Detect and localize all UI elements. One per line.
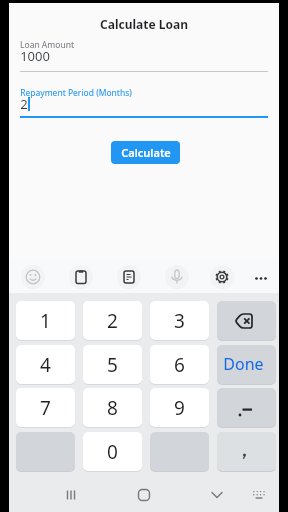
staticText: 2: [107, 308, 118, 334]
button[interactable]: [20, 84, 268, 121]
button[interactable]: 6: [150, 345, 209, 384]
button[interactable]: [21, 265, 45, 289]
button[interactable]: [199, 483, 235, 509]
button[interactable]: 8: [83, 388, 142, 427]
button[interactable]: [117, 265, 141, 289]
staticText: 5: [107, 352, 118, 378]
staticText: 6: [174, 352, 185, 378]
button[interactable]: Done: [217, 345, 276, 384]
button[interactable]: [249, 265, 273, 289]
button[interactable]: [217, 432, 276, 471]
button[interactable]: 2: [83, 301, 142, 340]
staticText: Done: [223, 353, 264, 375]
button[interactable]: [217, 301, 276, 340]
button[interactable]: [241, 483, 277, 509]
staticText: 0: [107, 439, 118, 465]
button[interactable]: 9: [150, 388, 209, 427]
button[interactable]: 0: [83, 432, 142, 471]
staticText: Loan Amount: [20, 39, 74, 51]
staticText: Calculate Loan: [100, 16, 188, 32]
button[interactable]: [69, 265, 93, 289]
button[interactable]: [210, 265, 234, 289]
button[interactable]: [165, 265, 189, 289]
staticText: 9: [174, 395, 185, 421]
staticText: 3: [174, 308, 185, 334]
button[interactable]: 1: [16, 301, 75, 340]
button[interactable]: [20, 36, 268, 73]
button[interactable]: 5: [83, 345, 142, 384]
button[interactable]: 7: [16, 388, 75, 427]
button[interactable]: Calculate: [111, 141, 180, 164]
staticText: 8: [107, 395, 118, 421]
staticText: 2: [20, 95, 28, 113]
staticText: 1000: [20, 47, 50, 65]
staticText: 7: [40, 395, 51, 421]
button[interactable]: [53, 483, 89, 509]
staticText: Repayment Period (Months): [20, 87, 132, 99]
button[interactable]: [126, 483, 162, 509]
staticText: 1: [40, 308, 51, 334]
button[interactable]: 4: [16, 345, 75, 384]
staticText: 4: [40, 352, 51, 378]
button[interactable]: [217, 388, 276, 427]
button[interactable]: 3: [150, 301, 209, 340]
staticText: Calculate: [121, 145, 171, 160]
